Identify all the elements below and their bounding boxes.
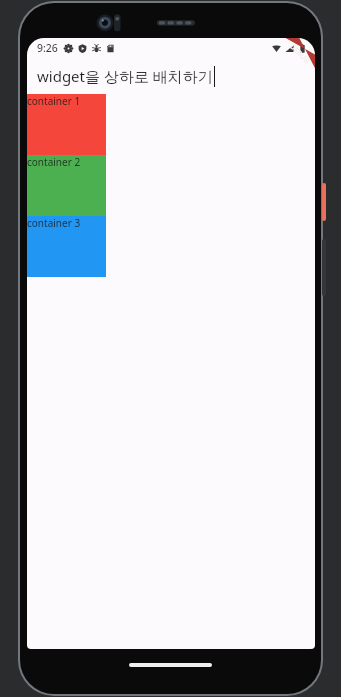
other: Settings [64,44,73,53]
staticText: container 2 [27,155,81,169]
button[interactable]: container 2 [27,155,106,216]
other: Battery [298,44,307,53]
other: Debug [92,44,101,53]
other: Wi-Fi [272,44,281,53]
other: SD card [106,44,115,53]
staticText: container 3 [27,216,81,230]
button[interactable]: container 1 [27,94,106,155]
staticText: DEBUG [287,42,312,66]
staticText: 9:26 [37,41,58,55]
button[interactable]: container 3 [27,216,106,277]
staticText: widget을 상하로 배치하기 [37,66,213,86]
other: Protected [78,44,87,53]
other: Signal [285,44,294,53]
staticText: container 1 [27,94,81,108]
